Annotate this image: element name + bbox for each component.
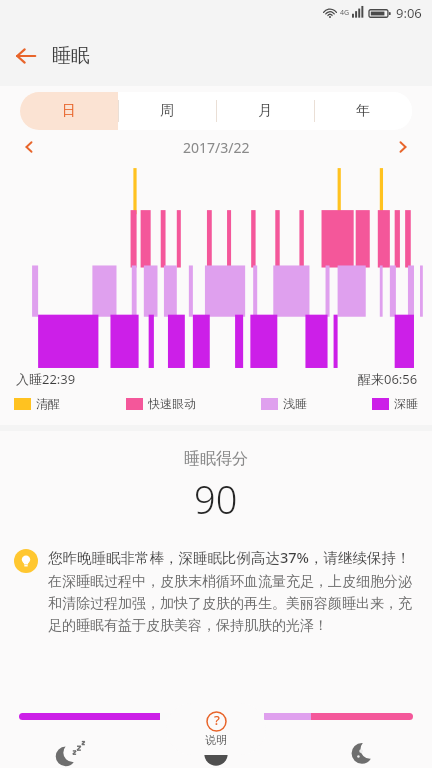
staticText: 2017/3/22 bbox=[183, 138, 250, 157]
button[interactable]: Next day bbox=[388, 132, 418, 162]
staticText: 深睡 bbox=[394, 396, 418, 411]
staticText: 快速眼动 bbox=[148, 396, 196, 411]
button[interactable]: Back bbox=[0, 30, 52, 82]
staticText: 您昨晚睡眠非常棒，深睡眠比例高达37%，请继续保持！ bbox=[48, 547, 411, 567]
staticText: 在深睡眠过程中，皮肤末梢循环血流量充足，上皮细胞分泌和清除过程加强，加快了皮肤的… bbox=[48, 573, 416, 635]
staticText: 周 bbox=[160, 102, 174, 120]
staticText: 4G bbox=[340, 8, 350, 18]
staticText: 睡眠得分 bbox=[184, 449, 248, 469]
button[interactable]: Previous day bbox=[14, 132, 44, 162]
button[interactable]: 周 bbox=[118, 92, 216, 130]
button[interactable]: 年 bbox=[314, 92, 412, 130]
staticText: 睡眠 bbox=[52, 44, 90, 68]
staticText: 年 bbox=[356, 102, 370, 120]
button[interactable]: 日 bbox=[20, 92, 118, 130]
staticText: 说明 bbox=[205, 733, 227, 747]
staticText: 日 bbox=[62, 102, 76, 120]
button[interactable]: 月 bbox=[216, 92, 314, 130]
staticText: 入睡22:39 bbox=[16, 370, 76, 388]
staticText: ? bbox=[214, 711, 220, 729]
staticText: 浅睡 bbox=[283, 396, 307, 411]
button[interactable]: 说明 bbox=[166, 703, 266, 755]
staticText: 90 bbox=[194, 473, 238, 525]
staticText: 醒来06:56 bbox=[358, 370, 418, 388]
staticText: 月 bbox=[258, 102, 272, 120]
staticText: 清醒 bbox=[36, 396, 60, 411]
staticText: 9:06 bbox=[396, 4, 422, 22]
